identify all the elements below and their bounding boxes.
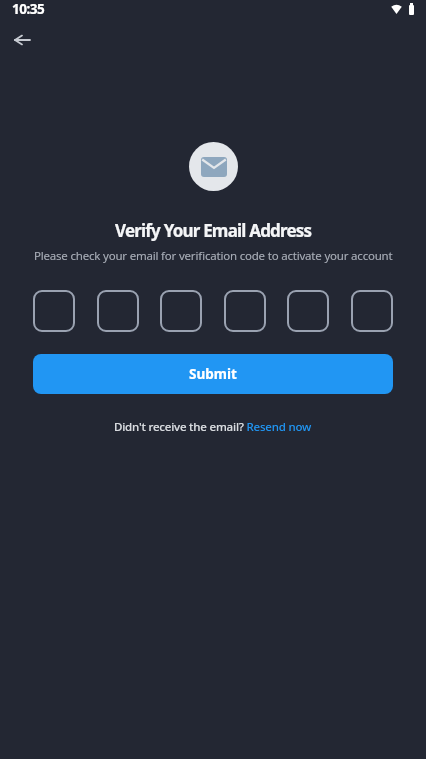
staticText: Please check your email for verification… [34,248,393,264]
staticText: Verify Your Email Address [115,219,312,242]
staticText: Didn't receive the email? Resend now [114,419,312,435]
staticText: Submit [189,365,237,383]
staticText: 10:35 [12,0,45,18]
